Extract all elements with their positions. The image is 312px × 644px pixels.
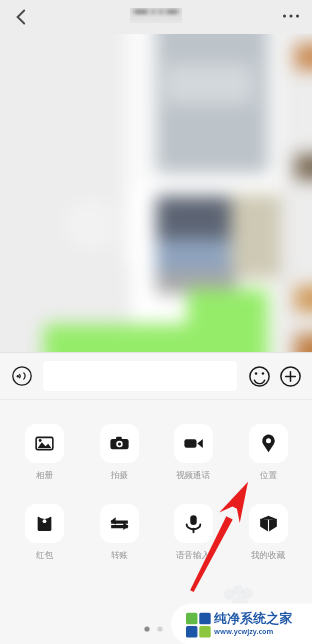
button[interactable]: Emoji bbox=[246, 363, 272, 389]
staticText: 拍摄 bbox=[111, 470, 128, 481]
button[interactable]: 位置 bbox=[238, 424, 298, 481]
button[interactable]: 拍摄 bbox=[89, 424, 149, 481]
staticText: 位置 bbox=[260, 470, 277, 481]
button[interactable]: 视频通话 bbox=[163, 424, 223, 481]
button[interactable]: 转账 bbox=[89, 504, 149, 561]
button[interactable]: More options bbox=[276, 2, 306, 32]
staticText: 红包 bbox=[36, 550, 53, 561]
button[interactable]: Back bbox=[6, 2, 36, 32]
staticText: 视频通话 bbox=[176, 470, 210, 481]
button[interactable]: 红包 bbox=[14, 504, 74, 561]
staticText: 语音输入 bbox=[176, 550, 210, 561]
button[interactable]: 我的收藏 bbox=[238, 504, 298, 561]
staticText: 相册 bbox=[36, 470, 53, 481]
staticText: 纯净系统之家 bbox=[214, 610, 292, 626]
staticText: 我的收藏 bbox=[251, 550, 285, 561]
button[interactable]: 相册 bbox=[14, 424, 74, 481]
staticText: www.ycwjzy.com bbox=[214, 627, 274, 637]
button[interactable]: Voice input bbox=[9, 363, 35, 389]
button[interactable]: More functions bbox=[277, 363, 303, 389]
button[interactable]: 语音输入 bbox=[163, 504, 223, 561]
staticText: 转账 bbox=[111, 550, 128, 561]
